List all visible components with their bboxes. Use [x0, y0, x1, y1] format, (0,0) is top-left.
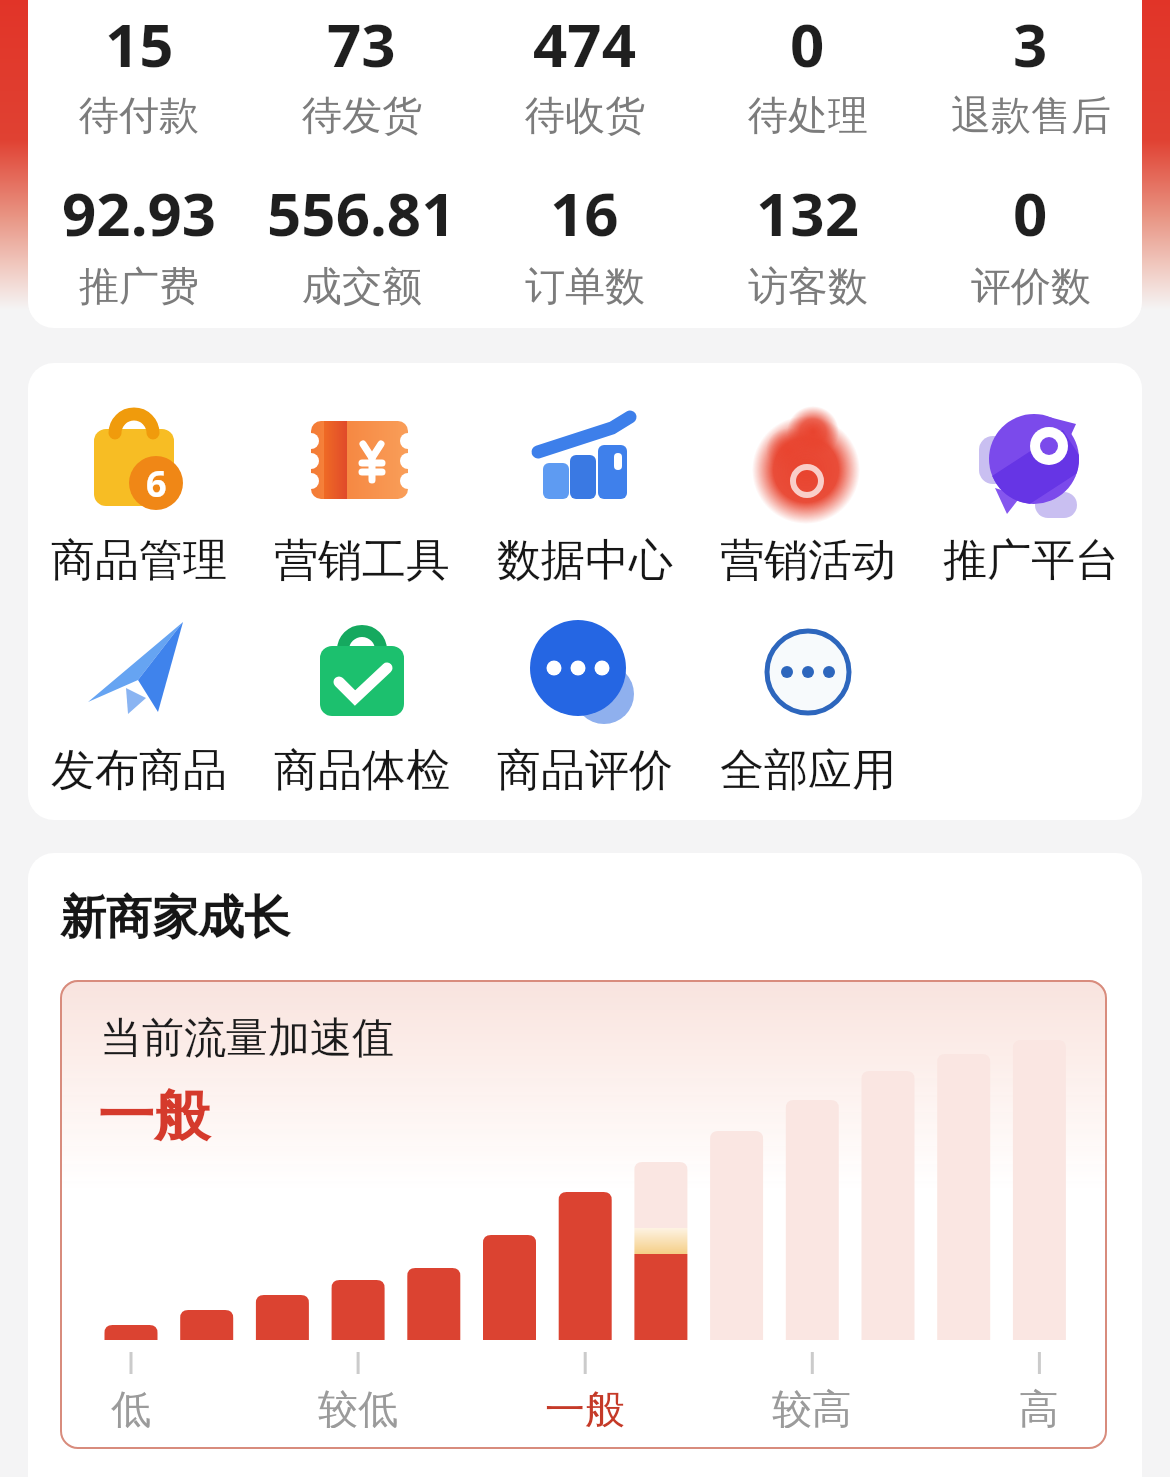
staticText: 较高 — [772, 1384, 852, 1428]
staticText: 推广费 — [79, 261, 199, 311]
staticText: 0 — [790, 3, 825, 85]
staticText: 新商家成长 — [60, 889, 290, 947]
staticText: 132 — [756, 172, 859, 242]
button[interactable]: 556.81 — [250, 172, 473, 242]
staticText: 营销活动 — [720, 533, 896, 583]
staticText: 一般 — [98, 1081, 210, 1152]
button[interactable] — [250, 618, 473, 722]
staticText: 高 — [1019, 1384, 1059, 1428]
staticText: 当前流量加速值 — [100, 1012, 394, 1065]
staticText: 待付款 — [79, 90, 199, 140]
staticText: 评价数 — [971, 261, 1091, 311]
button[interactable] — [28, 618, 250, 722]
button[interactable] — [250, 408, 473, 512]
button[interactable]: 15 — [28, 0, 250, 88]
staticText: 73 — [327, 3, 396, 85]
button[interactable]: 3 — [919, 0, 1142, 88]
staticText: 16 — [550, 172, 619, 242]
staticText: 低 — [111, 1384, 151, 1428]
staticText: 较低 — [318, 1384, 398, 1428]
staticText: 成交额 — [302, 261, 422, 311]
button[interactable] — [473, 618, 696, 722]
staticText: 发布商品 — [51, 743, 227, 793]
button[interactable]: 92.93 — [28, 172, 250, 242]
staticText: 订单数 — [525, 261, 645, 311]
staticText: 待处理 — [748, 90, 868, 140]
button[interactable]: 0 — [696, 0, 919, 88]
staticText: 数据中心 — [497, 533, 673, 583]
staticText: 15 — [105, 3, 174, 85]
staticText: 访客数 — [748, 261, 868, 311]
button[interactable]: 6 — [28, 408, 250, 512]
staticText: 商品体检 — [274, 743, 450, 793]
staticText: 待收货 — [525, 90, 645, 140]
staticText: 0 — [1013, 172, 1048, 242]
staticText: 3 — [1013, 3, 1048, 85]
staticText: 全部应用 — [720, 743, 896, 793]
button[interactable] — [473, 408, 696, 512]
staticText: 营销工具 — [274, 533, 450, 583]
button[interactable]: 0 — [919, 172, 1142, 242]
staticText: 退款售后 — [951, 90, 1111, 140]
button[interactable]: 16 — [473, 172, 696, 242]
button[interactable]: 当前流量加速值 — [60, 980, 1107, 1449]
button[interactable] — [919, 408, 1142, 512]
staticText: 一般 — [545, 1384, 625, 1428]
staticText: 商品评价 — [497, 743, 673, 793]
staticText: 待发货 — [302, 90, 422, 140]
staticText: 474 — [533, 3, 636, 85]
button[interactable] — [696, 408, 919, 512]
staticText: 推广平台 — [943, 533, 1119, 583]
button[interactable]: 132 — [696, 172, 919, 242]
staticText: 92.93 — [62, 172, 217, 242]
button[interactable]: 73 — [250, 0, 473, 88]
staticText: 6 — [146, 459, 167, 503]
staticText: 商品管理 — [51, 533, 227, 583]
button[interactable] — [696, 618, 919, 722]
button[interactable]: 474 — [473, 0, 696, 88]
staticText: 556.81 — [267, 172, 456, 242]
